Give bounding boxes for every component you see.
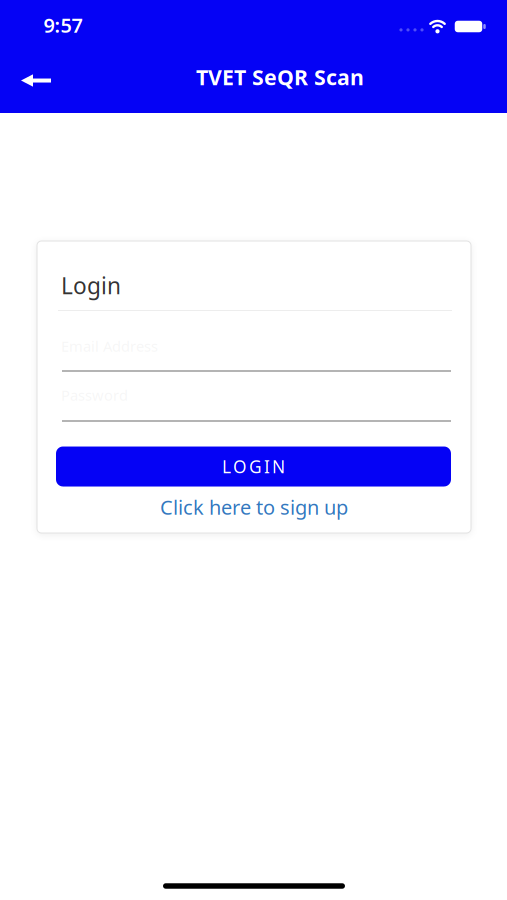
button[interactable]: Back xyxy=(15,58,59,102)
button[interactable]: L O G I N xyxy=(56,446,451,486)
staticText: Click here to sign up xyxy=(160,494,348,520)
staticText: 9:57 xyxy=(43,12,82,38)
staticText: TVET SeQR Scan xyxy=(196,63,364,91)
staticText: Login xyxy=(61,270,121,300)
staticText: L O G I N xyxy=(222,455,285,478)
button[interactable]: Click here to sign up xyxy=(160,494,348,520)
